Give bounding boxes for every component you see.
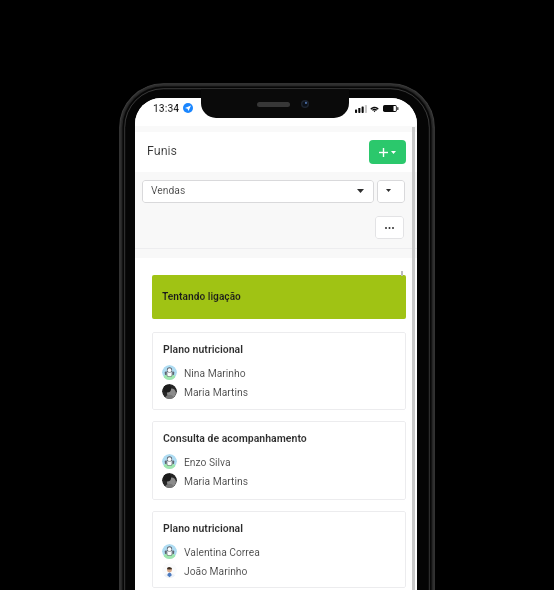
staticText: Maria Martins (184, 475, 248, 487)
staticText: Maria Martins (184, 386, 248, 398)
staticText: Plano nutricional (163, 522, 243, 534)
staticText: João Marinho (184, 565, 248, 577)
staticText: Funis (147, 143, 178, 158)
staticText: Enzo Silva (184, 456, 231, 468)
staticText: Plano nutricional (163, 343, 243, 355)
button[interactable]: Consulta de acompanhamento (152, 421, 406, 500)
button[interactable]: Tentando ligação (152, 275, 406, 319)
staticText: Vendas (151, 184, 186, 196)
button[interactable]: Plano nutricional (152, 332, 406, 410)
button[interactable]: Plano nutricional (152, 511, 406, 588)
staticText: Nina Marinho (184, 367, 246, 379)
staticText: Tentando ligação (162, 291, 241, 303)
button[interactable]: Selecionar funil (377, 180, 405, 203)
staticText: 13:34 (153, 102, 180, 114)
button[interactable]: Mais opções (375, 216, 404, 239)
staticText: Consulta de acompanhamento (163, 432, 307, 444)
staticText: Valentina Correa (184, 546, 260, 558)
button[interactable]: Adicionar (369, 140, 406, 164)
button[interactable]: Vendas (142, 180, 374, 203)
